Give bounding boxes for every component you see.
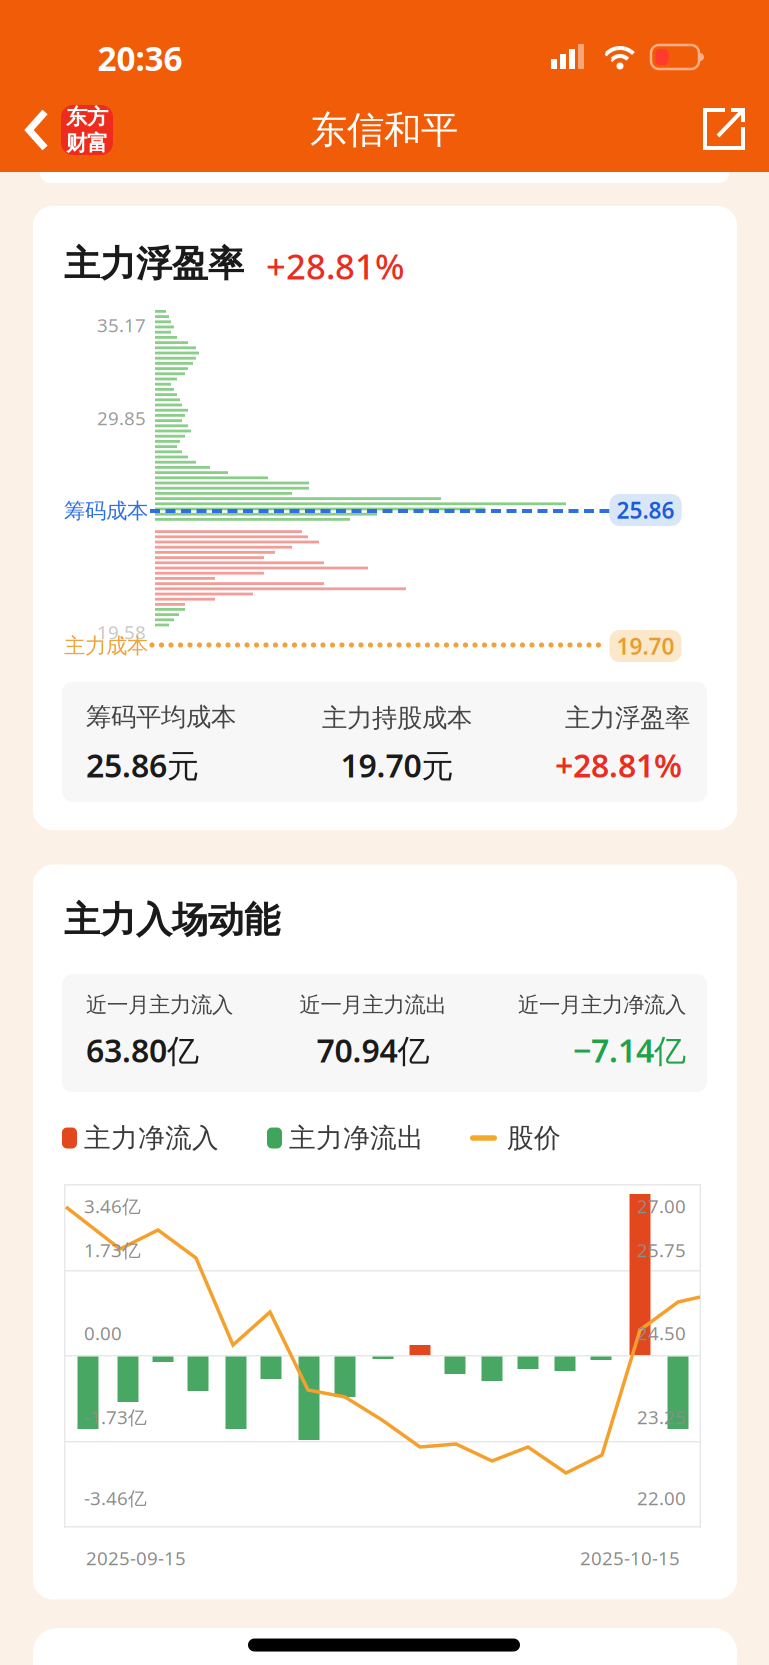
button[interactable]: 东方财富 bbox=[61, 105, 113, 155]
staticText: 20:36 bbox=[97, 36, 182, 80]
staticText: 19.58 bbox=[97, 620, 146, 644]
staticText: 25.75 bbox=[637, 1238, 686, 1262]
staticText: 35.17 bbox=[97, 313, 146, 337]
staticText: 东信和平 bbox=[310, 107, 458, 153]
staticText: 70.94亿 bbox=[316, 1029, 429, 1071]
button[interactable]: Back bbox=[26, 109, 48, 151]
staticText: 22.00 bbox=[637, 1486, 686, 1510]
staticText: 27.00 bbox=[637, 1194, 686, 1218]
staticText: 主力浮盈率 bbox=[565, 702, 690, 733]
staticText: 东方 bbox=[66, 104, 108, 130]
staticText: +28.81% bbox=[266, 243, 405, 289]
staticText: 1.73亿 bbox=[84, 1238, 141, 1262]
staticText: 25.86元 bbox=[86, 744, 199, 786]
staticText: 主力成本 bbox=[64, 633, 148, 659]
staticText: 19.70元 bbox=[340, 744, 453, 786]
button[interactable]: Share bbox=[703, 108, 745, 150]
staticText: 主力入场动能 bbox=[64, 898, 280, 942]
staticText: 29.85 bbox=[97, 406, 146, 430]
staticText: 2025-10-15 bbox=[580, 1546, 680, 1570]
staticText: 股价 bbox=[507, 1122, 561, 1154]
staticText: 主力净流入 bbox=[84, 1122, 219, 1154]
staticText: 23.25 bbox=[637, 1405, 686, 1429]
staticText: -1.73亿 bbox=[84, 1405, 147, 1429]
staticText: -3.46亿 bbox=[84, 1486, 147, 1510]
staticText: −7.14亿 bbox=[573, 1029, 686, 1071]
staticText: 近一月主力流入 bbox=[86, 992, 233, 1018]
staticText: 近一月主力流出 bbox=[299, 992, 446, 1018]
staticText: 25.86 bbox=[616, 495, 674, 525]
staticText: 2025-09-15 bbox=[86, 1546, 186, 1570]
staticText: 3.46亿 bbox=[84, 1194, 141, 1218]
staticText: 19.70 bbox=[616, 631, 674, 661]
staticText: 63.80亿 bbox=[86, 1029, 199, 1071]
staticText: 主力浮盈率 bbox=[64, 242, 244, 286]
staticText: 0.00 bbox=[84, 1321, 122, 1345]
staticText: 近一月主力净流入 bbox=[518, 992, 686, 1018]
staticText: 主力净流出 bbox=[289, 1122, 424, 1154]
staticText: 财富 bbox=[66, 130, 108, 156]
staticText: 主力持股成本 bbox=[322, 702, 472, 733]
staticText: +28.81% bbox=[555, 744, 682, 786]
staticText: 筹码成本 bbox=[64, 498, 148, 524]
staticText: 筹码平均成本 bbox=[86, 701, 236, 732]
staticText: 24.50 bbox=[637, 1321, 686, 1345]
